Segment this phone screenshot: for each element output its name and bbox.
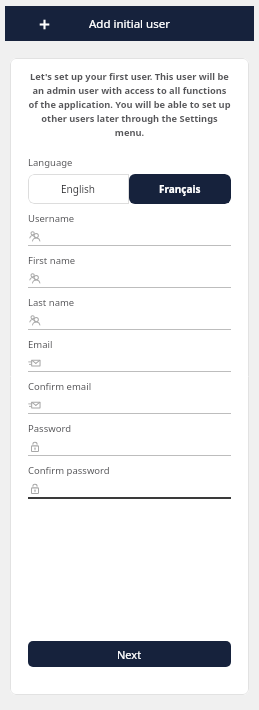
button[interactable]: Add [33,13,55,35]
staticText: Add initial user [89,16,170,32]
button[interactable]: Français [129,174,231,204]
staticText: Next [117,647,142,662]
button[interactable]: Email [28,356,231,370]
staticText: Let's set up your first user. This user … [28,70,231,138]
button[interactable]: Username [28,230,231,244]
staticText: Username [28,212,75,225]
staticText: Password [28,422,71,435]
staticText: Last name [28,296,75,309]
staticText: Email [28,338,53,351]
staticText: English [61,182,96,196]
button[interactable]: First name [28,272,231,286]
button[interactable]: English [28,174,129,204]
staticText: Language [28,156,73,169]
staticText: First name [28,254,76,267]
staticText: Confirm password [28,464,110,477]
staticText: Confirm email [28,380,92,393]
button[interactable]: Last name [28,314,231,328]
staticText: Français [159,182,201,196]
button[interactable]: Confirm password [28,482,231,496]
button[interactable]: Confirm email [28,398,231,412]
button[interactable]: Next [28,641,231,667]
button[interactable]: Password [28,440,231,454]
